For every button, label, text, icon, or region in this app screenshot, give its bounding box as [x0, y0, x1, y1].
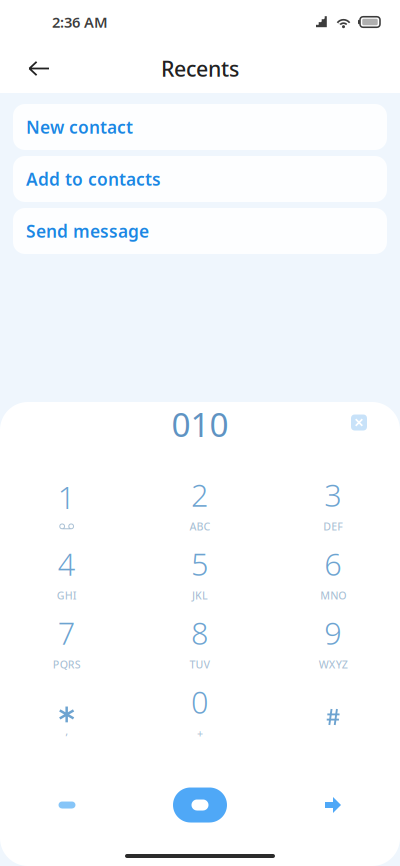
- staticText: DEF: [323, 519, 343, 533]
- button[interactable]: 3: [267, 476, 400, 532]
- staticText: WXYZ: [319, 657, 348, 671]
- button[interactable]: Back: [14, 46, 64, 90]
- button[interactable]: New contact: [13, 104, 387, 150]
- staticText: Add to contacts: [26, 167, 161, 190]
- button[interactable]: 8: [133, 614, 267, 670]
- staticText: +: [197, 726, 203, 740]
- staticText: 4: [58, 544, 76, 584]
- button[interactable]: 2: [133, 476, 267, 532]
- button[interactable]: Forward: [293, 783, 373, 827]
- button[interactable]: 1: [0, 476, 133, 532]
- staticText: 1: [58, 477, 76, 517]
- button[interactable]: 9: [267, 614, 400, 670]
- staticText: ,: [65, 724, 68, 738]
- button[interactable]: [267, 683, 400, 739]
- staticText: PQRS: [53, 657, 81, 671]
- staticText: 0: [191, 682, 209, 722]
- button[interactable]: 4: [0, 545, 133, 601]
- staticText: 2: [191, 475, 209, 515]
- button[interactable]: ,: [0, 683, 133, 739]
- button[interactable]: 0: [133, 683, 267, 739]
- staticText: 7: [58, 613, 76, 653]
- button[interactable]: Send message: [13, 208, 387, 254]
- staticText: 3: [324, 475, 342, 515]
- staticText: MNO: [320, 588, 346, 602]
- staticText: 010: [171, 402, 228, 446]
- staticText: GHI: [57, 588, 77, 602]
- staticText: 9: [324, 613, 342, 653]
- button[interactable]: 7: [0, 614, 133, 670]
- staticText: 2:36 AM: [52, 12, 108, 32]
- staticText: TUV: [189, 657, 210, 671]
- button[interactable]: Add: [27, 783, 107, 827]
- button[interactable]: 5: [133, 545, 267, 601]
- staticText: 8: [191, 613, 209, 653]
- staticText: Send message: [26, 219, 149, 242]
- button[interactable]: Delete: [337, 403, 381, 447]
- staticText: JKL: [192, 588, 208, 602]
- staticText: ABC: [189, 519, 210, 533]
- staticText: Recents: [161, 54, 239, 83]
- button[interactable]: 6: [267, 545, 400, 601]
- staticText: 6: [324, 544, 342, 584]
- staticText: 5: [191, 544, 209, 584]
- staticText: New contact: [26, 115, 133, 138]
- button[interactable]: Call: [165, 783, 235, 827]
- button[interactable]: Add to contacts: [13, 156, 387, 202]
